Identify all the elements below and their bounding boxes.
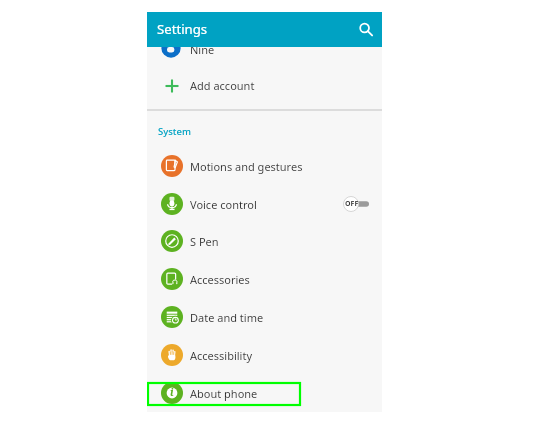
button[interactable]: S Pen — [147, 222, 382, 260]
button[interactable]: Add account — [147, 67, 382, 105]
button[interactable]: Voice control — [147, 185, 382, 223]
button[interactable]: Date and time — [147, 298, 382, 336]
button[interactable]: i — [147, 374, 382, 412]
button[interactable]: Accessibility — [147, 336, 382, 374]
staticText: Accessibility — [190, 348, 253, 363]
button[interactable]: Nine — [147, 30, 382, 68]
staticText: i — [170, 385, 174, 399]
button[interactable]: Search — [349, 14, 381, 46]
staticText: Settings — [157, 20, 208, 38]
staticText: Motions and gestures — [190, 159, 303, 174]
button[interactable]: OFF — [343, 196, 369, 212]
staticText: Nine — [190, 42, 215, 57]
staticText: About phone — [190, 386, 258, 401]
staticText: Voice control — [190, 197, 257, 212]
staticText: System — [158, 125, 191, 138]
staticText: OFF — [345, 199, 359, 209]
button[interactable]: Motions and gestures — [147, 147, 382, 185]
staticText: Add account — [190, 78, 255, 93]
staticText: Date and time — [190, 310, 264, 325]
button[interactable]: Accessories — [147, 260, 382, 298]
staticText: S Pen — [190, 234, 219, 249]
staticText: Accessories — [190, 272, 250, 287]
